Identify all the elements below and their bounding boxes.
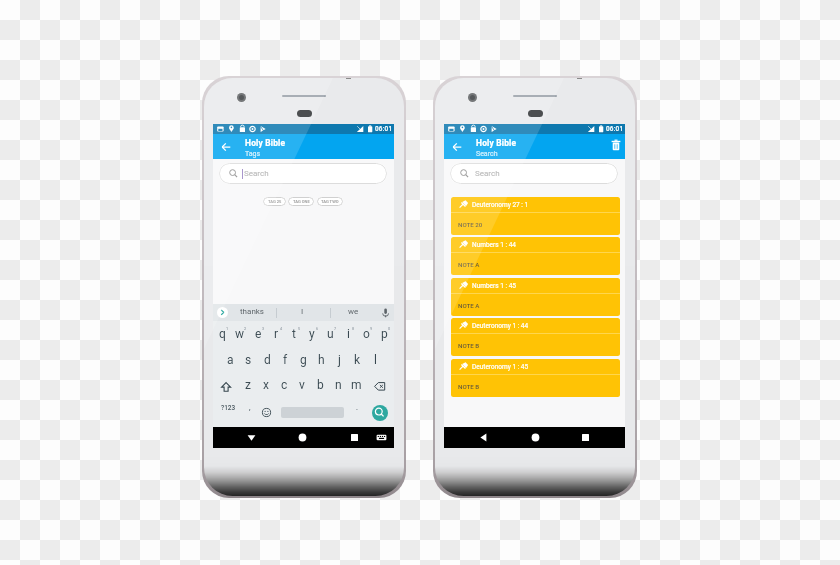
staticText: n: [335, 378, 342, 392]
button[interactable]: r: [264, 327, 288, 343]
staticText: 06:01: [606, 125, 624, 133]
button[interactable]: Deuteronomy 27 : 1: [451, 197, 620, 235]
button[interactable]: TAG ONE: [288, 197, 314, 206]
button[interactable]: Back: [218, 139, 234, 155]
button[interactable]: l: [363, 353, 387, 369]
staticText: TAG TWO: [321, 199, 339, 204]
button[interactable]: Numbers 1 : 45: [451, 278, 620, 316]
staticText: Search: [244, 169, 269, 178]
staticText: j: [338, 353, 341, 367]
button[interactable]: j: [327, 353, 351, 369]
staticText: Tags: [245, 150, 261, 158]
button[interactable]: TAG 25: [263, 197, 286, 206]
button[interactable]: Recents: [344, 427, 365, 448]
staticText: Holy Bible: [245, 138, 286, 148]
staticText: Deuteronomy 1 : 45: [472, 363, 529, 371]
button[interactable]: i: [336, 327, 360, 343]
staticText: NOTE A: [458, 261, 480, 268]
button[interactable]: Home: [525, 427, 546, 448]
staticText: p: [381, 327, 388, 341]
button[interactable]: Back: [449, 139, 465, 155]
button[interactable]: Deuteronomy 1 : 44: [451, 318, 620, 356]
button[interactable]: o: [354, 327, 378, 343]
button[interactable]: q: [210, 327, 234, 343]
staticText: 0: [388, 326, 391, 330]
staticText: Numbers 1 : 45: [472, 282, 516, 290]
button[interactable]: Search: [372, 405, 388, 421]
staticText: 4: [280, 326, 283, 330]
button[interactable]: Deuteronomy 1 : 45: [451, 359, 620, 397]
staticText: I: [301, 307, 304, 316]
button[interactable]: Hide keyboard: [241, 427, 262, 448]
button[interactable]: Recents: [575, 427, 596, 448]
button[interactable]: c: [272, 378, 296, 394]
staticText: e: [255, 327, 262, 341]
button[interactable]: Home: [292, 427, 313, 448]
staticText: b: [317, 378, 324, 392]
staticText: Deuteronomy 27 : 1: [472, 201, 529, 209]
button[interactable]: .: [345, 404, 369, 413]
button[interactable]: m: [344, 378, 368, 394]
button[interactable]: s: [236, 353, 260, 369]
button[interactable]: v: [290, 378, 314, 394]
button[interactable]: n: [326, 378, 350, 394]
staticText: NOTE A: [458, 302, 480, 309]
staticText: 7: [334, 326, 337, 330]
staticText: d: [264, 353, 271, 367]
staticText: g: [300, 353, 307, 367]
button[interactable]: Search: [219, 163, 387, 184]
button[interactable]: Shift: [221, 382, 231, 392]
button[interactable]: Emoji: [262, 408, 271, 417]
staticText: 2: [244, 326, 247, 330]
button[interactable]: z: [236, 378, 260, 394]
staticText: c: [281, 378, 288, 392]
staticText: y: [309, 327, 315, 341]
button[interactable]: a: [218, 353, 242, 369]
staticText: Numbers 1 : 44: [472, 241, 516, 249]
button[interactable]: Search: [450, 163, 618, 184]
button[interactable]: TAG TWO: [317, 197, 343, 206]
button[interactable]: ,: [238, 404, 262, 413]
button[interactable]: u: [318, 327, 342, 343]
button[interactable]: h: [309, 353, 333, 369]
button[interactable]: ?123: [216, 404, 240, 412]
staticText: Holy Bible: [476, 138, 517, 148]
staticText: s: [245, 353, 252, 367]
button[interactable]: d: [255, 353, 279, 369]
button[interactable]: x: [254, 378, 278, 394]
button[interactable]: Switch keyboard: [371, 427, 392, 448]
staticText: q: [219, 327, 226, 341]
button[interactable]: e: [246, 327, 270, 343]
staticText: l: [374, 353, 377, 367]
button[interactable]: w: [228, 327, 252, 343]
staticText: 8: [352, 326, 355, 330]
staticText: 9: [370, 326, 373, 330]
staticText: 06:01: [375, 125, 393, 133]
button[interactable]: k: [345, 353, 369, 369]
staticText: 1: [226, 326, 229, 330]
button[interactable]: p: [372, 327, 396, 343]
staticText: TAG 25: [268, 199, 282, 204]
button[interactable]: Delete: [608, 138, 624, 154]
staticText: ?123: [221, 404, 236, 412]
staticText: .: [356, 404, 358, 412]
button[interactable]: f: [273, 353, 297, 369]
staticText: k: [354, 353, 361, 367]
staticText: r: [274, 327, 279, 341]
button[interactable]: More suggestions: [217, 307, 228, 318]
staticText: f: [283, 353, 288, 367]
button[interactable]: g: [291, 353, 315, 369]
button[interactable]: Back: [473, 427, 494, 448]
staticText: z: [245, 378, 251, 392]
button[interactable]: t: [282, 327, 306, 343]
button[interactable]: Backspace: [374, 382, 385, 391]
staticText: w: [235, 327, 245, 341]
staticText: h: [318, 353, 325, 367]
button[interactable]: y: [300, 327, 324, 343]
staticText: ,: [249, 404, 251, 412]
button[interactable]: b: [308, 378, 332, 394]
button[interactable]: Numbers 1 : 44: [451, 237, 620, 275]
staticText: t: [292, 327, 296, 341]
staticText: i: [347, 327, 350, 341]
